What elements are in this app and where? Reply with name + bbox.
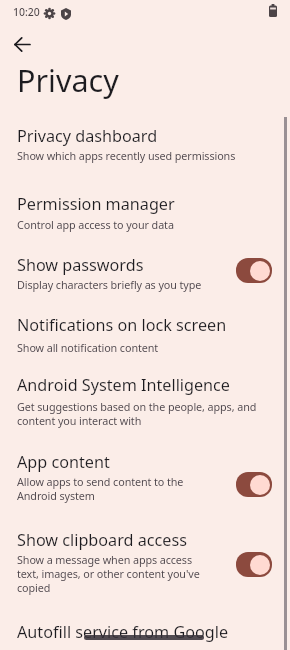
staticText: Show clipboard access [17, 529, 187, 551]
staticText: content you interact with [17, 413, 142, 428]
button[interactable]: Show passwords [0, 244, 290, 302]
staticText: Get suggestions based on the people, app… [17, 399, 257, 414]
staticText: Display characters briefly as you type [17, 277, 202, 292]
staticText: Notifications on lock screen [17, 314, 227, 336]
button[interactable]: Android System Intelligence [0, 364, 290, 438]
staticText: Android System Intelligence [17, 374, 230, 396]
button[interactable] [236, 552, 272, 577]
button[interactable]: Notifications on lock screen [0, 304, 290, 362]
staticText: Autofill service from Google [17, 621, 229, 643]
staticText: Show a message when apps access [17, 552, 192, 567]
button[interactable]: App content [0, 439, 290, 515]
button[interactable]: Permission manager [0, 180, 290, 242]
staticText: Show all notification content [17, 340, 159, 355]
staticText: Allow apps to send content to the [17, 474, 184, 489]
staticText: Control app access to your data [17, 217, 174, 232]
button[interactable] [236, 258, 272, 283]
staticText: 10:20 [13, 5, 40, 19]
button[interactable] [2, 24, 42, 64]
button[interactable]: Autofill service from Google [0, 607, 290, 650]
button[interactable]: Show clipboard access [0, 517, 290, 605]
button[interactable]: Privacy dashboard [0, 112, 290, 174]
staticText: Privacy dashboard [17, 125, 158, 147]
staticText: copied [17, 580, 51, 595]
staticText: text, images, or other content you've [17, 566, 200, 581]
staticText: App content [17, 451, 110, 473]
button[interactable] [236, 472, 272, 497]
staticText: Show which apps recently used permission… [17, 148, 236, 163]
staticText: Privacy [17, 59, 119, 101]
staticText: Permission manager [17, 193, 175, 215]
staticText: Show passwords [17, 254, 144, 276]
staticText: Android system [17, 488, 95, 503]
